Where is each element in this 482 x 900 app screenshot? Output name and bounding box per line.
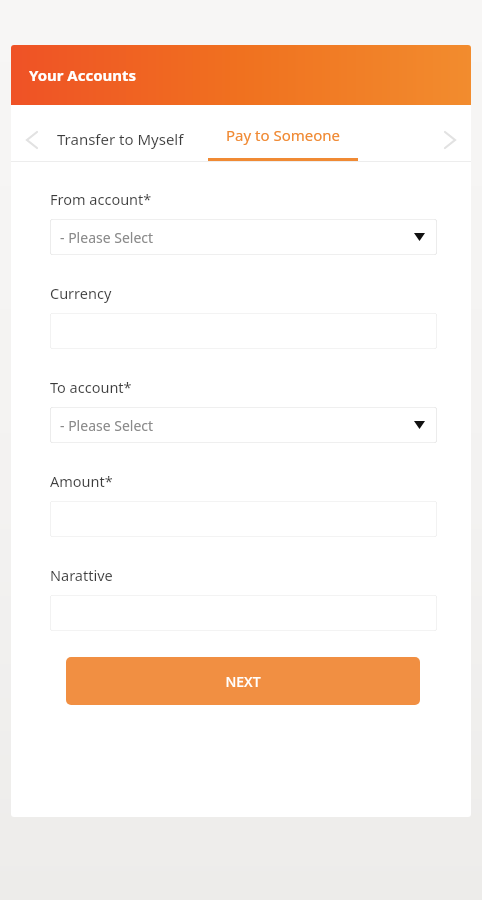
staticText: Narattive bbox=[50, 565, 113, 585]
button[interactable]: - Please Select bbox=[50, 407, 437, 443]
button[interactable]: NEXT bbox=[66, 657, 420, 705]
staticText: Transfer to Myself bbox=[57, 129, 184, 149]
staticText: Pay to Someone bbox=[226, 125, 341, 145]
staticText: Amount* bbox=[50, 471, 113, 491]
button[interactable]: - Please Select bbox=[50, 219, 437, 255]
button[interactable]: Previous tab bbox=[17, 125, 47, 155]
staticText: From account* bbox=[50, 189, 152, 209]
staticText: - Please Select bbox=[60, 228, 154, 247]
staticText: Your Accounts bbox=[29, 65, 137, 85]
staticText: To account* bbox=[50, 377, 132, 397]
button[interactable]: Pay to Someone bbox=[208, 119, 358, 161]
staticText: Currency bbox=[50, 283, 112, 303]
button[interactable]: Next tab bbox=[435, 125, 465, 155]
staticText: NEXT bbox=[225, 672, 261, 691]
staticText: - Please Select bbox=[60, 416, 154, 435]
button[interactable]: Transfer to Myself bbox=[57, 117, 184, 161]
